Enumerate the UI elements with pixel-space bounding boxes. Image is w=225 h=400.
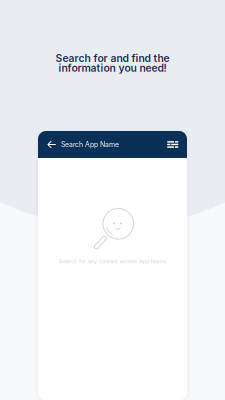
staticText: Search for any content across App Name [59, 258, 166, 265]
button[interactable]: Back [38, 131, 61, 158]
staticText: Search for and find the [55, 52, 169, 65]
staticText: information you need! [58, 62, 166, 74]
staticText: Search App Name [61, 140, 119, 149]
button[interactable]: Filter options [167, 131, 187, 158]
